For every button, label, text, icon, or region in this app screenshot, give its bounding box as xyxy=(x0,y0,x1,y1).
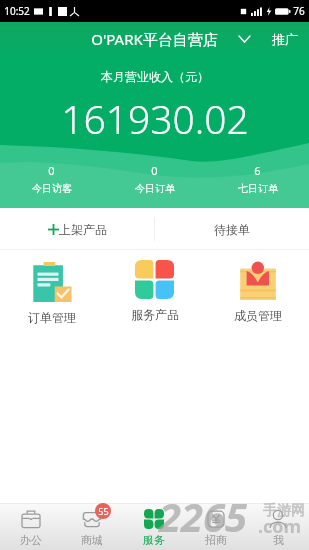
staticText: 6 xyxy=(254,163,261,178)
button[interactable]: 订单管理 xyxy=(0,260,103,325)
staticText: 76 xyxy=(293,4,305,18)
staticText: 办公 xyxy=(20,533,42,547)
staticText: 商城 xyxy=(81,533,103,547)
staticText: 推广 xyxy=(272,31,298,47)
staticText: 待接单 xyxy=(214,222,250,237)
staticText: .com xyxy=(258,514,302,539)
button[interactable]: 办公 xyxy=(0,504,61,550)
button[interactable]: 服务 xyxy=(123,504,185,550)
staticText: 2265 xyxy=(159,489,248,543)
button[interactable]: 我 xyxy=(247,504,309,550)
staticText: 10:52 xyxy=(4,4,30,18)
button[interactable]: 55 xyxy=(61,504,123,550)
staticText: O'PARK平台自营店 xyxy=(91,29,218,49)
button[interactable]: 招商 xyxy=(185,504,247,550)
staticText: 成员管理 xyxy=(234,308,282,323)
button[interactable]: 推广 xyxy=(266,27,309,51)
staticText: 服务产品 xyxy=(131,307,179,322)
button[interactable]: 6 xyxy=(206,163,309,195)
staticText: 本月营业收入（元） xyxy=(101,69,209,84)
staticText: 服务 xyxy=(143,533,165,547)
staticText: 0 xyxy=(48,163,55,178)
staticText: 0 xyxy=(151,163,158,178)
button[interactable]: 待接单 xyxy=(155,208,309,250)
staticText: 我 xyxy=(273,533,284,547)
staticText: 161930.02 xyxy=(61,92,249,145)
button[interactable]: 成员管理 xyxy=(206,260,309,323)
staticText: 七日订单 xyxy=(238,182,278,195)
staticText: 今日订单 xyxy=(135,182,175,195)
button[interactable]: 服务产品 xyxy=(103,260,206,322)
staticText: 今日访客 xyxy=(32,182,72,195)
staticText: 招商 xyxy=(205,533,227,547)
button[interactable]: 0 xyxy=(103,163,206,195)
button[interactable]: 0 xyxy=(0,163,103,195)
staticText: 上架产品 xyxy=(59,222,107,237)
staticText: 手游网 xyxy=(263,502,305,520)
button[interactable]: O'PARK平台自营店 xyxy=(85,25,224,53)
button[interactable]: 上架产品 xyxy=(0,208,154,250)
staticText: 订单管理 xyxy=(28,310,76,325)
staticText: 55 xyxy=(98,505,109,517)
